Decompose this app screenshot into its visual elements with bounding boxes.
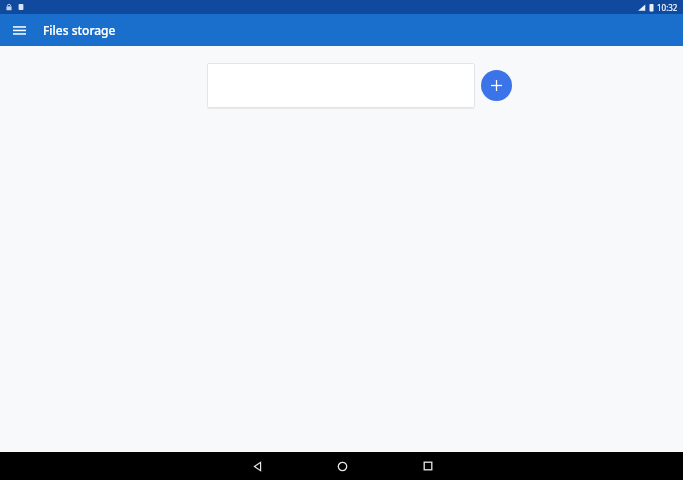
button[interactable]: Recent apps — [414, 452, 442, 480]
button[interactable]: Add file — [481, 70, 512, 101]
button[interactable]: File name input field — [207, 63, 475, 108]
button[interactable]: Home — [328, 452, 356, 480]
staticText: 10:32 — [657, 2, 678, 13]
button[interactable]: Open navigation menu — [7, 18, 31, 42]
button[interactable]: Back — [243, 452, 271, 480]
staticText: Files storage — [43, 22, 116, 38]
